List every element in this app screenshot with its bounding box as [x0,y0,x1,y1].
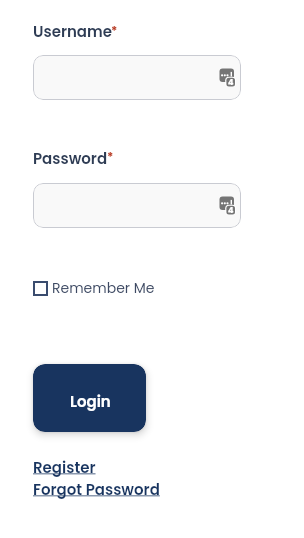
button[interactable] [33,183,241,228]
staticText: 4 [228,77,234,88]
staticText: * [111,22,118,39]
button[interactable]: Login [33,364,146,432]
staticText: Login [70,391,111,412]
button[interactable] [33,55,241,100]
staticText: 4 [228,205,234,216]
button[interactable]: Register [33,457,96,478]
button[interactable]: Remember Me [33,278,155,298]
staticText: * [107,148,114,165]
button[interactable]: Forgot Password [33,479,160,500]
staticText: Remember Me [52,278,155,298]
staticText: Username [33,21,113,42]
staticText: Password [33,148,108,169]
